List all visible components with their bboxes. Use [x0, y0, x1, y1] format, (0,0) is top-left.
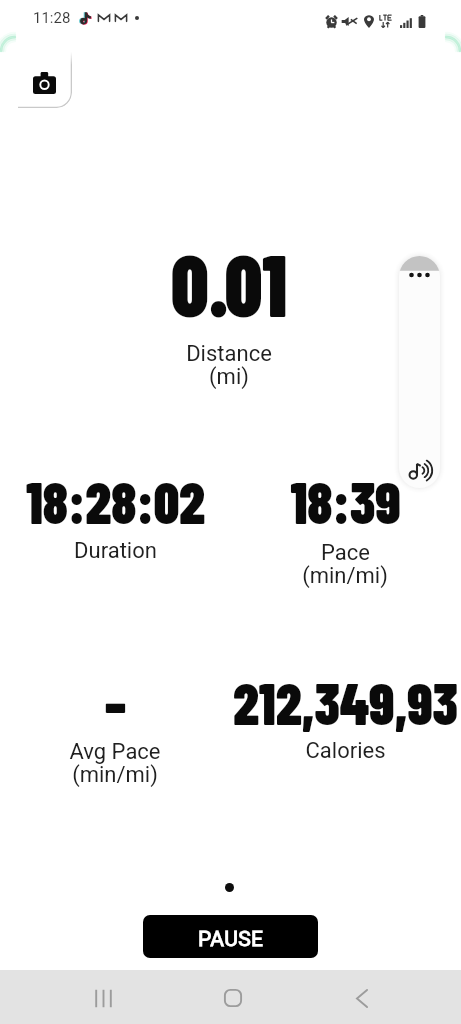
- staticText: 0.01: [171, 230, 287, 334]
- staticText: Calories: [305, 738, 386, 764]
- button[interactable]: Recent apps: [66, 970, 132, 1024]
- staticText: (min/mi): [302, 563, 388, 589]
- staticText: –: [105, 666, 126, 737]
- button[interactable]: PAUSE: [143, 915, 318, 958]
- button[interactable]: Edge panel handle: [399, 256, 440, 488]
- staticText: 18:28:02: [26, 465, 205, 536]
- button[interactable]: Camera: [18, 36, 72, 108]
- staticText: 18:39: [290, 465, 400, 536]
- staticText: (min/mi): [72, 762, 158, 788]
- button[interactable]: Back: [329, 970, 395, 1024]
- staticText: Avg Pace: [69, 739, 161, 765]
- staticText: Distance: [186, 341, 272, 367]
- staticText: Duration: [74, 538, 157, 564]
- staticText: 212,349,93: [233, 666, 458, 737]
- staticText: Pace: [321, 540, 370, 566]
- staticText: 11:28: [33, 9, 71, 27]
- staticText: (mi): [209, 364, 249, 390]
- button[interactable]: Home: [198, 970, 264, 1024]
- staticText: PAUSE: [198, 927, 264, 952]
